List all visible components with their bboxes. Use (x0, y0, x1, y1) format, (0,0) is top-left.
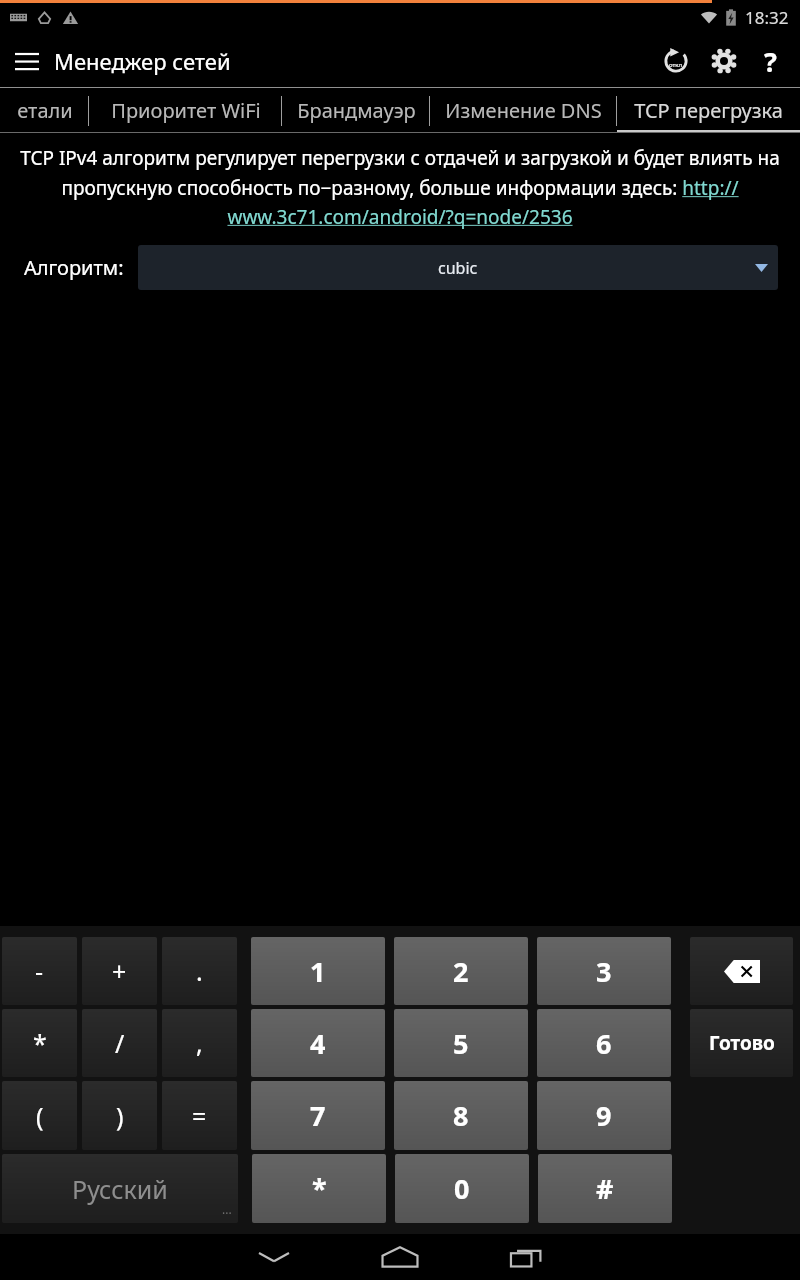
staticText: Брандмауэр (297, 97, 416, 124)
staticText: 5 (453, 1025, 469, 1062)
button[interactable]: Recent apps (467, 1234, 585, 1280)
button[interactable]: 5 (394, 1009, 528, 1077)
staticText: Русский (72, 1172, 168, 1206)
staticText: Приоритет WiFi (111, 97, 261, 124)
button[interactable]: TCP перегрузка (617, 88, 800, 133)
staticText: Готово (709, 1030, 775, 1056)
staticText: 7 (310, 1097, 326, 1134)
button[interactable]: 6 (537, 1009, 671, 1077)
button[interactable]: 0 (395, 1154, 529, 1223)
button[interactable]: , (162, 1009, 237, 1077)
button[interactable]: Изменение DNS (430, 88, 617, 133)
staticText: 8 (453, 1097, 469, 1134)
staticText: cubic (438, 257, 478, 279)
staticText: 2 (453, 953, 469, 990)
staticText: 9 (596, 1097, 612, 1134)
staticText: 6 (596, 1025, 612, 1062)
button[interactable]: 7 (251, 1081, 385, 1150)
staticText: 18:32 (745, 6, 789, 29)
button[interactable]: ( (2, 1081, 77, 1150)
button[interactable]: * (252, 1154, 386, 1223)
staticText: ··· (222, 1205, 232, 1221)
button[interactable]: Hide keyboard (215, 1234, 333, 1280)
button[interactable]: Disable (652, 37, 700, 85)
button[interactable]: 2 (394, 937, 528, 1005)
button[interactable]: + (82, 937, 157, 1005)
button[interactable]: Open navigation drawer (0, 34, 54, 87)
staticText: + (112, 954, 127, 988)
staticText: # (596, 1170, 614, 1207)
staticText: 4 (310, 1025, 326, 1062)
button[interactable]: Приоритет WiFi (89, 88, 282, 133)
button[interactable]: Algorithm: cubic (138, 245, 778, 290)
button[interactable]: Готово (690, 1009, 793, 1077)
staticText: Менеджер сетей (54, 46, 231, 76)
button[interactable]: 1 (251, 937, 385, 1005)
button[interactable]: / (82, 1009, 157, 1077)
staticText: етали (17, 97, 73, 124)
button[interactable]: 8 (394, 1081, 528, 1150)
button[interactable]: Help (748, 39, 792, 83)
button[interactable]: Backspace (690, 937, 793, 1005)
staticText: ) (116, 1099, 124, 1133)
staticText: * (312, 1170, 327, 1207)
staticText: 3 (596, 953, 612, 990)
staticText: Алгоритм: (24, 254, 124, 281)
button[interactable]: 4 (251, 1009, 385, 1077)
button[interactable]: Брандмауэр (282, 88, 430, 133)
button[interactable]: . (162, 937, 237, 1005)
staticText: 0 (454, 1170, 470, 1207)
button[interactable]: 9 (537, 1081, 671, 1150)
staticText: = (192, 1099, 207, 1133)
button[interactable]: 3 (537, 937, 671, 1005)
button[interactable]: ) (82, 1081, 157, 1150)
staticText: откл (669, 61, 683, 69)
staticText: TCP IPv4 алгоритм регулирует перегрузки … (16, 145, 784, 229)
button[interactable]: Home (341, 1234, 459, 1280)
staticText: . (196, 954, 203, 988)
staticText: ? (764, 43, 777, 80)
button[interactable]: # (538, 1154, 672, 1223)
staticText: , (196, 1026, 203, 1060)
staticText: 1 (310, 953, 326, 990)
staticText: Изменение DNS (445, 97, 602, 124)
staticText: / (115, 1026, 125, 1060)
staticText: - (35, 954, 44, 988)
button[interactable]: = (162, 1081, 237, 1150)
button[interactable]: - (2, 937, 77, 1005)
button[interactable]: * (2, 1009, 77, 1077)
staticText: * (33, 1026, 47, 1060)
staticText: ( (36, 1099, 44, 1133)
staticText: TCP перегрузка (634, 97, 783, 124)
button[interactable]: етали (0, 88, 89, 133)
button[interactable]: Settings (700, 37, 748, 85)
button[interactable]: Русский (2, 1154, 238, 1223)
